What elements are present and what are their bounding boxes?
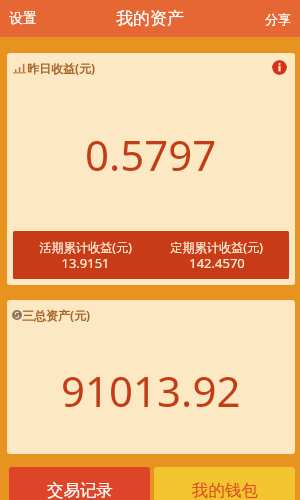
button[interactable]: 设置 [0, 2, 46, 36]
staticText: 定期累计收益(元) [170, 239, 263, 256]
staticText: 三总资产(元) [22, 307, 91, 323]
staticText: 设置 [9, 10, 37, 28]
staticText: 交易记录 [47, 480, 113, 500]
staticText: 0.5797 [85, 126, 217, 174]
staticText: 91013.92 [61, 362, 241, 410]
button[interactable]: 我的钱包 [154, 467, 295, 500]
staticText: 昨日收益(元) [27, 60, 96, 76]
staticText: 13.9151 [61, 254, 110, 272]
staticText: 我的资产 [116, 8, 184, 29]
staticText: 我的钱包 [192, 480, 258, 500]
button[interactable]: 分享 [256, 3, 300, 35]
button[interactable]: Info [272, 60, 287, 75]
staticText: 分享 [265, 11, 291, 27]
staticText: 活期累计收益(元) [39, 239, 132, 256]
staticText: 142.4570 [189, 254, 245, 272]
button[interactable]: 交易记录 [9, 467, 150, 500]
